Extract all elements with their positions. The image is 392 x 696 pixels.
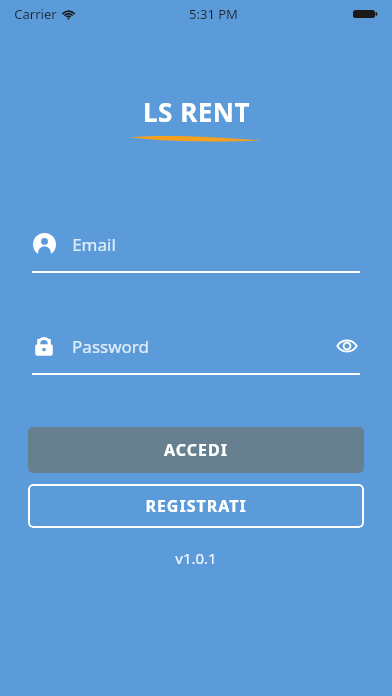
button[interactable]: Show password <box>334 333 360 359</box>
staticText: Password <box>72 335 149 358</box>
staticText: Email <box>72 233 116 256</box>
button[interactable]: ACCEDI <box>28 427 364 473</box>
staticText: ACCEDI <box>164 439 228 461</box>
staticText: REGISTRATI <box>145 495 247 517</box>
staticText: v1.0.1 <box>175 548 217 568</box>
staticText: Carrier <box>14 5 57 23</box>
staticText: LS RENT <box>143 94 250 129</box>
button[interactable]: Email <box>32 229 360 273</box>
button[interactable]: REGISTRATI <box>28 484 364 528</box>
staticText: 5:31 PM <box>189 5 238 23</box>
button[interactable]: Password <box>32 331 360 375</box>
